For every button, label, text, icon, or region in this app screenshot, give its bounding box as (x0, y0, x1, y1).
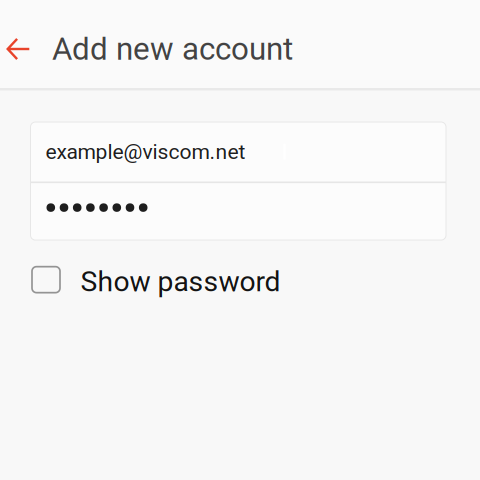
button[interactable]: example@viscom.net (30, 122, 446, 181)
button[interactable]: Back (0, 25, 37, 73)
button[interactable]: Show password (0, 240, 480, 296)
staticText: Add new account (52, 31, 293, 67)
staticText: Show password (80, 265, 280, 298)
staticText: example@viscom.net (45, 139, 245, 164)
button[interactable] (30, 183, 446, 240)
